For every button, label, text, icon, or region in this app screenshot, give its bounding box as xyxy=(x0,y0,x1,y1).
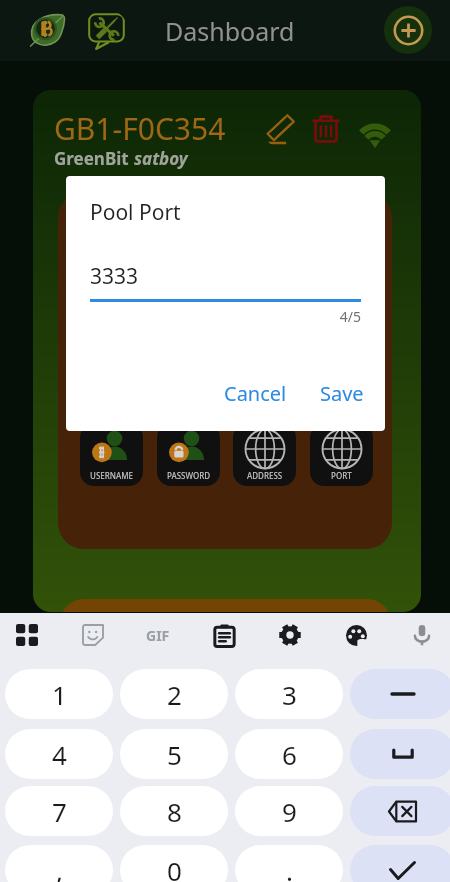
button[interactable]: 7 xyxy=(5,786,113,836)
button[interactable]: Cancel xyxy=(216,375,295,412)
button[interactable]: Connection xyxy=(350,107,400,157)
button[interactable]: PORT xyxy=(310,424,373,486)
staticText: 4/5 xyxy=(90,307,361,326)
staticText: USERNAME xyxy=(90,470,134,481)
button[interactable]: Delete xyxy=(307,109,345,147)
button[interactable]: 8 xyxy=(120,786,228,836)
button[interactable]: App logo xyxy=(24,8,70,54)
button[interactable]: Backspace xyxy=(350,786,450,836)
button[interactable]: Themes xyxy=(337,616,375,654)
staticText: Pool Port xyxy=(90,198,181,227)
staticText: GB1-F0C354 xyxy=(54,108,226,149)
button[interactable]: Stickers xyxy=(74,616,112,654)
staticText: 0 xyxy=(167,853,182,882)
button[interactable]: Settings xyxy=(271,616,309,654)
button[interactable]: 9 xyxy=(235,786,343,836)
button[interactable]: Space xyxy=(350,729,450,779)
staticText: 2 xyxy=(167,677,182,712)
button[interactable] xyxy=(60,599,391,612)
staticText: PASSWORD xyxy=(167,470,211,481)
staticText: PORT xyxy=(331,470,352,481)
button[interactable]: Edit xyxy=(262,109,300,147)
button[interactable]: Enter xyxy=(350,845,450,882)
staticText: satboy xyxy=(134,147,188,170)
staticText: . xyxy=(286,853,293,882)
staticText: Save xyxy=(320,380,364,407)
button[interactable]: Support xyxy=(84,9,128,53)
staticText: 3333 xyxy=(90,262,139,291)
button[interactable]: 0 xyxy=(120,845,228,882)
staticText: 3 xyxy=(282,677,297,712)
button[interactable]: PASSWORD xyxy=(157,424,220,486)
staticText: 7 xyxy=(52,794,67,829)
staticText: 1 xyxy=(52,677,67,712)
staticText: , xyxy=(56,853,63,882)
button[interactable]: Apps xyxy=(8,616,46,654)
button[interactable]: 5 xyxy=(120,729,228,779)
button[interactable]: 2 xyxy=(120,669,228,719)
button[interactable]: GIF xyxy=(139,616,177,654)
button[interactable]: Save xyxy=(312,375,372,412)
button[interactable]: , xyxy=(5,845,113,882)
staticText: 5 xyxy=(167,737,182,772)
staticText: 4 xyxy=(52,737,67,772)
button[interactable]: 1 xyxy=(5,669,113,719)
staticText: Dashboard xyxy=(165,14,295,48)
button[interactable]: 3 xyxy=(235,669,343,719)
button[interactable]: Dash xyxy=(350,669,450,719)
staticText: GreenBit xyxy=(54,147,134,170)
button[interactable]: Voice input xyxy=(403,616,441,654)
staticText: ADDRESS xyxy=(247,470,283,481)
staticText: 9 xyxy=(282,794,297,829)
button[interactable]: USERNAME xyxy=(80,424,143,486)
button[interactable]: ADDRESS xyxy=(233,424,296,486)
button[interactable]: . xyxy=(235,845,343,882)
button[interactable]: Clipboard xyxy=(205,616,243,654)
button[interactable]: 6 xyxy=(235,729,343,779)
staticText: 6 xyxy=(282,737,297,772)
button[interactable]: GB1-F0C354 xyxy=(33,90,421,612)
staticText: Cancel xyxy=(224,380,287,407)
button[interactable]: Add miner xyxy=(384,6,432,54)
staticText: GIF xyxy=(146,626,170,645)
button[interactable]: 4 xyxy=(5,729,113,779)
staticText: 8 xyxy=(167,794,182,829)
